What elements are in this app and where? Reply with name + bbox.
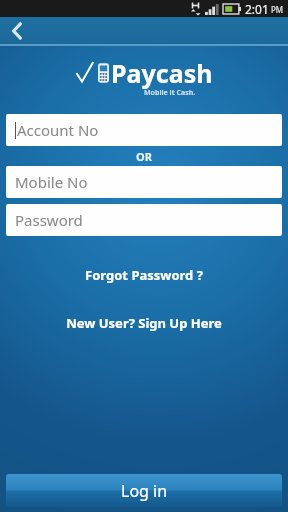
button[interactable]: Password bbox=[6, 204, 282, 236]
staticText: 2:01 bbox=[245, 1, 269, 17]
button[interactable]: Back bbox=[0, 17, 34, 44]
staticText: Account No bbox=[17, 120, 99, 140]
staticText: Mobile lt Cash. bbox=[144, 88, 196, 98]
button[interactable]: Mobile No bbox=[6, 166, 282, 198]
staticText: Mobile No bbox=[15, 172, 88, 192]
staticText: Paycash bbox=[111, 56, 213, 90]
staticText: Password bbox=[15, 210, 83, 230]
staticText: Log in bbox=[121, 480, 168, 502]
button[interactable]: Forgot Password ? bbox=[75, 264, 213, 286]
button[interactable]: New User? Sign Up Here bbox=[56, 312, 232, 334]
button[interactable]: Account No bbox=[6, 114, 282, 146]
staticText: OR bbox=[136, 149, 152, 164]
staticText: New User? Sign Up Here bbox=[66, 314, 222, 332]
button[interactable]: Log in bbox=[6, 474, 282, 507]
staticText: Forgot Password ? bbox=[85, 266, 203, 284]
staticText: PM bbox=[271, 4, 284, 15]
